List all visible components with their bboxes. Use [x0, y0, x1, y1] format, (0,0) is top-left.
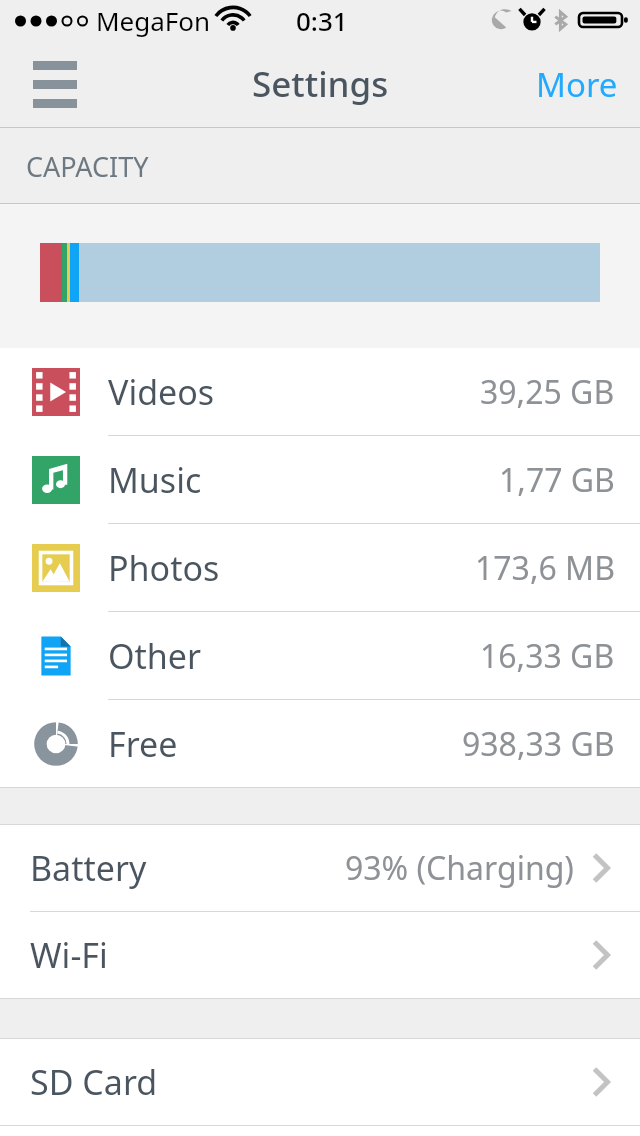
staticText: Photos: [108, 545, 220, 591]
button[interactable]: Wi-Fi: [0, 912, 640, 998]
button[interactable]: Videos: [0, 348, 640, 435]
staticText: 93% (Charging): [345, 846, 574, 890]
staticText: More: [536, 62, 618, 107]
staticText: Other: [108, 633, 202, 679]
button[interactable]: Battery: [0, 825, 640, 911]
button[interactable]: More: [514, 48, 640, 121]
staticText: 0:31: [296, 3, 348, 38]
staticText: MegaFon: [96, 3, 211, 38]
staticText: 938,33 GB: [462, 722, 615, 766]
button[interactable]: Photos: [0, 524, 640, 611]
staticText: 173,6 MB: [475, 546, 615, 590]
staticText: 1,77 GB: [499, 458, 615, 502]
button[interactable]: Free: [0, 700, 640, 787]
staticText: CAPACITY: [26, 148, 149, 185]
staticText: SD Card: [30, 1059, 158, 1105]
staticText: 39,25 GB: [480, 370, 615, 414]
staticText: Wi-Fi: [30, 932, 108, 978]
staticText: Settings: [252, 60, 389, 108]
button[interactable]: SD Card: [0, 1039, 640, 1125]
button[interactable]: Menu: [22, 49, 88, 120]
staticText: Videos: [108, 369, 215, 415]
staticText: Free: [108, 721, 178, 767]
staticText: Battery: [30, 845, 147, 891]
staticText: Music: [108, 457, 202, 503]
button[interactable]: Music: [0, 436, 640, 523]
staticText: 16,33 GB: [480, 634, 615, 678]
button[interactable]: Other: [0, 612, 640, 699]
